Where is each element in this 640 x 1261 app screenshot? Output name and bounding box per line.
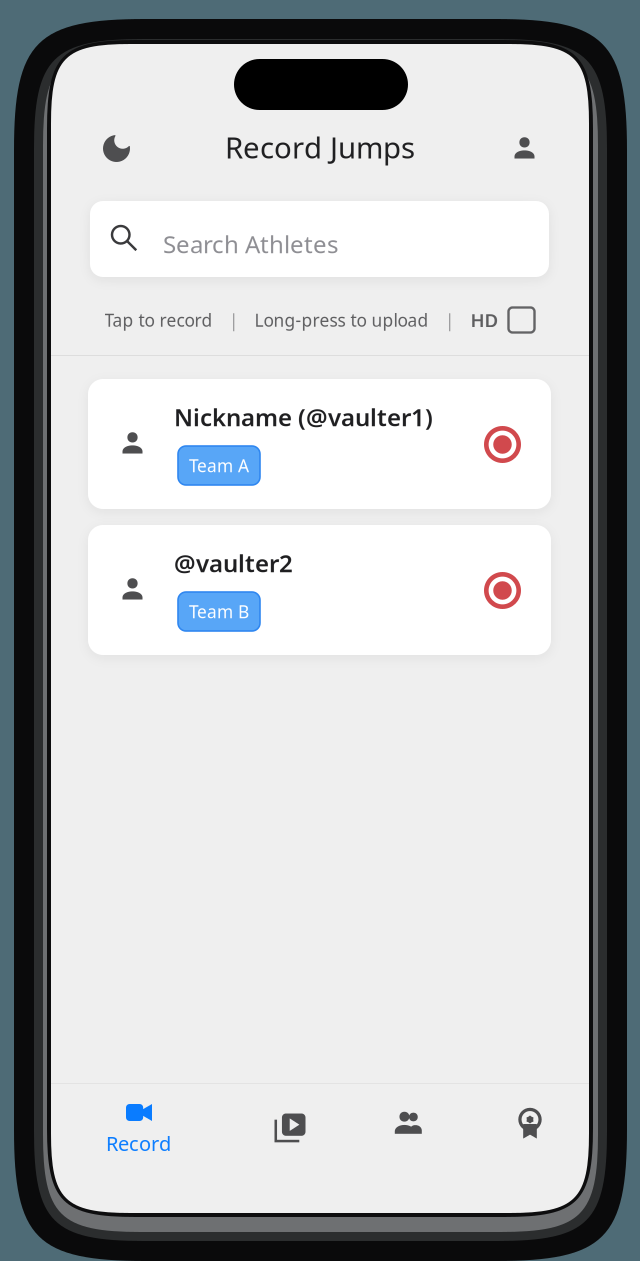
staticText: | [444,308,454,332]
button[interactable]: Profile [499,123,550,174]
button[interactable]: Athletes [327,1094,461,1184]
button[interactable]: Nickname (@vaulter1) [88,379,551,509]
staticText: Search Athletes [163,228,338,260]
button[interactable]: Night mode [90,122,143,175]
staticText: Record Jumps [225,127,415,166]
button[interactable]: Record [60,1094,194,1184]
button[interactable]: Records [463,1094,597,1184]
staticText: Nickname (@vaulter1) [174,401,433,433]
staticText: HD [470,308,498,332]
staticText: Record [106,1130,171,1157]
button[interactable]: Search Athletes [90,201,549,277]
button[interactable]: Library [207,1094,341,1184]
button[interactable]: HD capture [498,302,535,337]
staticText: | [228,308,238,332]
staticText: Team A [189,454,249,477]
staticText: Team B [189,600,249,623]
staticText: @vaulter2 [174,547,293,579]
button[interactable]: @vaulter2 [88,525,551,655]
staticText: Tap to record [104,308,212,331]
staticText: Long-press to upload [254,308,428,331]
